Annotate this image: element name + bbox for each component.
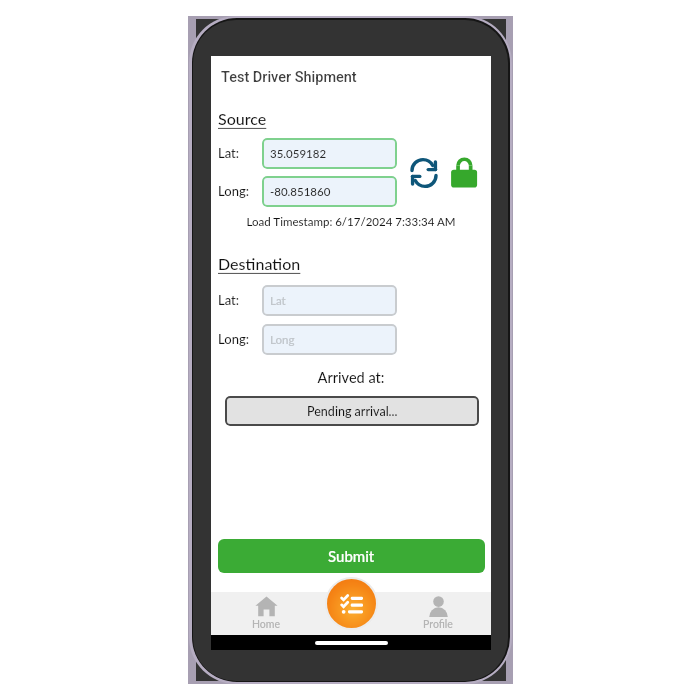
staticText: Lat: [218, 145, 240, 161]
button[interactable]: Sync location [406, 155, 442, 191]
staticText: Destination [218, 254, 301, 273]
button[interactable]: 35.059182 [262, 138, 397, 169]
button[interactable]: Lat [262, 285, 397, 316]
staticText: -80.851860 [270, 185, 331, 199]
staticText: Arrived at: [211, 369, 491, 386]
staticText: Long [270, 333, 295, 347]
button[interactable]: Pending arrival... [225, 396, 479, 426]
staticText: Profile [423, 618, 453, 631]
button[interactable]: Shipment tasks [327, 579, 376, 628]
staticText: Long: [218, 331, 249, 347]
staticText: Home [252, 618, 281, 631]
staticText: Submit [328, 547, 375, 565]
button[interactable]: Home [236, 592, 296, 635]
staticText: Load Timestamp: 6/17/2024 7:33:34 AM [211, 215, 491, 229]
button[interactable]: Submit [218, 539, 485, 573]
staticText: Test Driver Shipment [221, 69, 357, 86]
staticText: Pending arrival... [307, 404, 398, 419]
staticText: Long: [218, 183, 249, 199]
staticText: Source [218, 109, 267, 128]
staticText: 35.059182 [270, 147, 327, 161]
button[interactable]: -80.851860 [262, 176, 397, 207]
button[interactable]: Profile [408, 592, 468, 635]
button[interactable]: Long [262, 324, 397, 355]
button[interactable]: Lock shipment [448, 152, 480, 192]
staticText: Lat: [218, 292, 240, 308]
staticText: Lat [270, 294, 286, 308]
